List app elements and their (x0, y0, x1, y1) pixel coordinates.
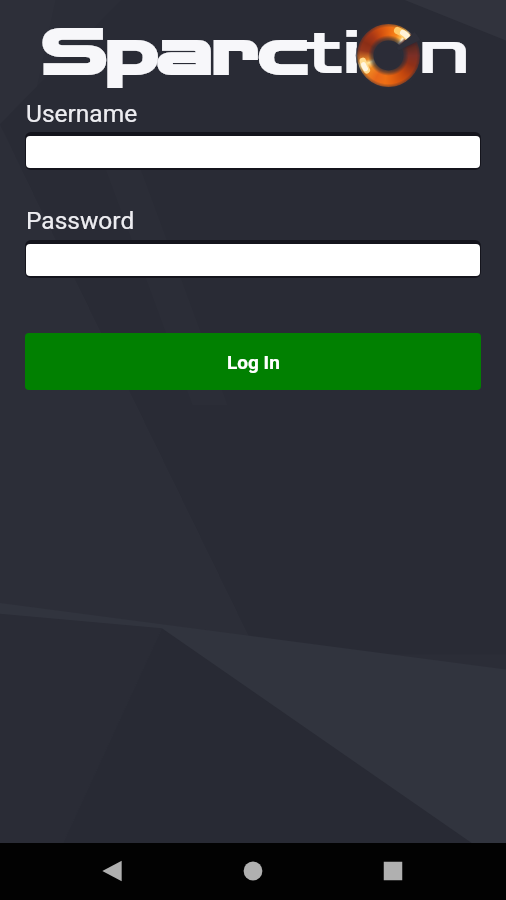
staticText: Username (26, 99, 138, 128)
button[interactable]: Recent apps (365, 843, 421, 899)
staticText: n (419, 18, 470, 89)
button[interactable] (26, 244, 480, 276)
staticText: Log In (227, 351, 280, 373)
staticText: Sparc (43, 18, 307, 89)
button[interactable] (26, 136, 480, 168)
staticText: Password (26, 206, 135, 235)
button[interactable]: Log In (25, 333, 481, 390)
button[interactable]: Back (84, 843, 140, 899)
staticText: Sparc (43, 18, 307, 89)
button[interactable]: Home (225, 843, 281, 899)
staticText: ti (304, 18, 362, 89)
